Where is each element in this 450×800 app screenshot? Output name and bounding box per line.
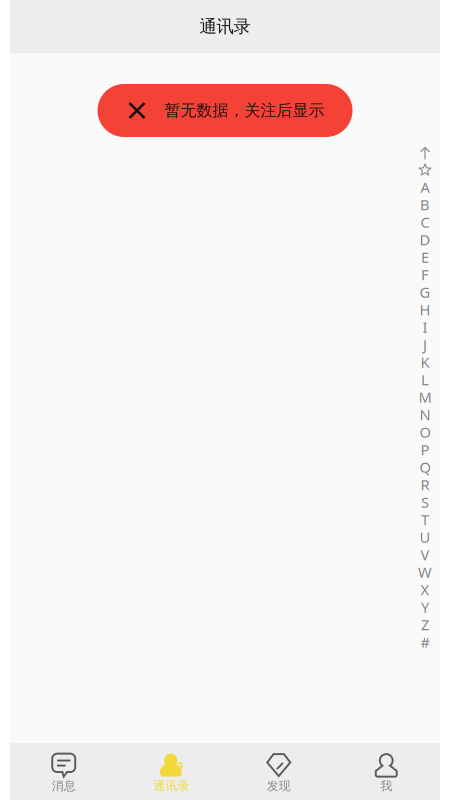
button[interactable]: 通讯录 [117, 742, 225, 800]
staticText: L [421, 370, 429, 389]
staticText: W [418, 562, 432, 582]
staticText: U [419, 527, 430, 547]
staticText: F [421, 265, 429, 284]
staticText: V [420, 545, 429, 564]
staticText: Q [419, 457, 430, 477]
staticText: X [420, 580, 429, 599]
staticText: R [420, 475, 429, 494]
staticText: Y [421, 597, 429, 617]
staticText: D [419, 230, 430, 249]
staticText: T [421, 510, 429, 529]
button[interactable]: 发现 [225, 742, 332, 800]
staticText: N [419, 405, 430, 424]
staticText: O [419, 422, 430, 442]
staticText: # [420, 632, 429, 652]
staticText: I [422, 317, 427, 337]
staticText: P [420, 440, 429, 459]
staticText: K [420, 352, 429, 372]
button[interactable]: 我 [332, 742, 440, 800]
staticText: J [423, 335, 427, 354]
staticText: B [420, 195, 430, 214]
button[interactable]: 暂无数据，关注后显示 [97, 84, 352, 137]
staticText: S [421, 492, 429, 512]
staticText: 通讯录 [153, 779, 189, 793]
button[interactable]: 消息 [10, 742, 117, 800]
staticText: 我 [380, 779, 392, 793]
staticText: 发现 [267, 779, 291, 793]
staticText: G [419, 282, 430, 302]
staticText: M [418, 387, 431, 407]
staticText: H [419, 300, 430, 319]
staticText: E [421, 247, 429, 267]
staticText: 通讯录 [199, 16, 250, 37]
button[interactable]: Index [415, 147, 435, 648]
staticText: 消息 [52, 779, 76, 793]
staticText: A [420, 177, 429, 197]
staticText: C [420, 212, 429, 232]
staticText: 暂无数据，关注后显示 [164, 101, 324, 120]
staticText: Z [421, 615, 429, 634]
